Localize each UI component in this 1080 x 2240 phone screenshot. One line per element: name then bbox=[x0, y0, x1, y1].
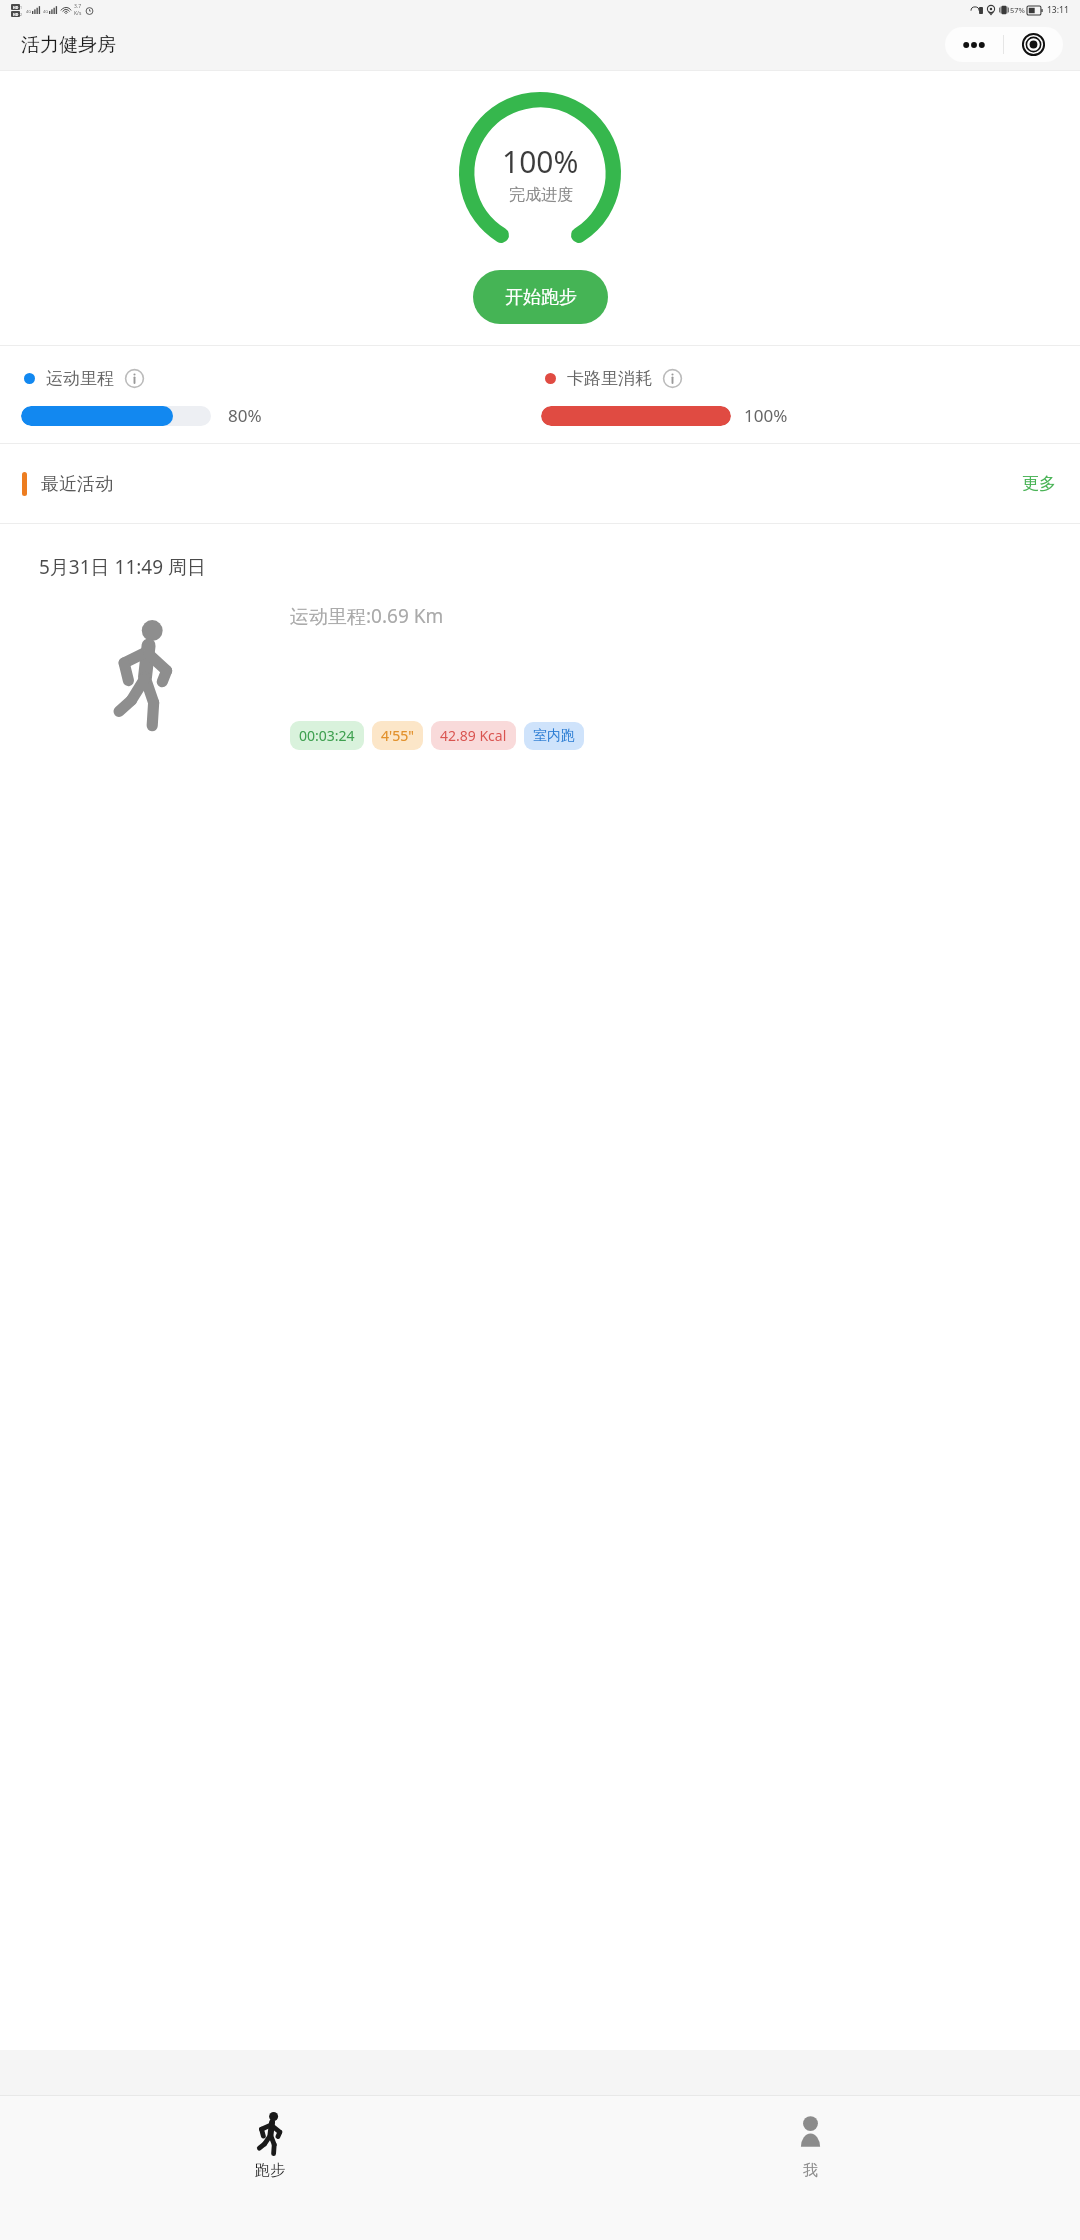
staticText: 最近活动 bbox=[41, 473, 113, 496]
staticText: 100% bbox=[502, 141, 579, 182]
staticText: 我 bbox=[803, 2161, 818, 2180]
staticText: 2 bbox=[20, 12, 23, 17]
staticText: 4G bbox=[26, 9, 32, 14]
staticText: 5月31日 11:49 周日 bbox=[39, 554, 207, 580]
button[interactable]: Target bbox=[1004, 27, 1063, 62]
button[interactable]: 运动里程 bbox=[24, 368, 540, 389]
staticText: 13:11 bbox=[1047, 4, 1069, 16]
staticText: 运动里程 bbox=[46, 368, 114, 389]
staticText: 活力健身房 bbox=[21, 33, 116, 57]
staticText: 4'55" bbox=[381, 726, 414, 745]
button[interactable]: 跑步 bbox=[0, 2096, 540, 2240]
staticText: 完成进度 bbox=[509, 185, 573, 205]
staticText: 3.7 bbox=[74, 3, 82, 10]
button[interactable]: 5月31日 11:49 周日 bbox=[0, 524, 1080, 776]
staticText: 57% bbox=[1010, 5, 1025, 15]
staticText: 更多 bbox=[1022, 473, 1056, 494]
button[interactable]: More bbox=[945, 27, 1003, 62]
staticText: 80% bbox=[228, 404, 262, 427]
button[interactable]: 我 bbox=[540, 2096, 1080, 2240]
staticText: 4G bbox=[43, 9, 49, 14]
staticText: HD bbox=[13, 5, 19, 10]
staticText: 卡路里消耗 bbox=[567, 368, 652, 389]
button[interactable]: 更多 bbox=[1018, 469, 1060, 498]
button[interactable]: 卡路里消耗 bbox=[545, 368, 1080, 389]
staticText: K/s bbox=[74, 10, 82, 17]
staticText: 1 bbox=[20, 5, 23, 10]
staticText: 00:03:24 bbox=[299, 726, 355, 745]
staticText: 开始跑步 bbox=[505, 286, 577, 309]
staticText: 运动里程:0.69 Km bbox=[290, 603, 444, 629]
staticText: HD bbox=[13, 12, 19, 17]
staticText: 100% bbox=[744, 404, 788, 427]
staticText: 42.89 Kcal bbox=[440, 726, 507, 745]
button[interactable]: 开始跑步 bbox=[473, 270, 608, 324]
staticText: 室内跑 bbox=[533, 727, 575, 745]
staticText: 跑步 bbox=[255, 2161, 285, 2180]
